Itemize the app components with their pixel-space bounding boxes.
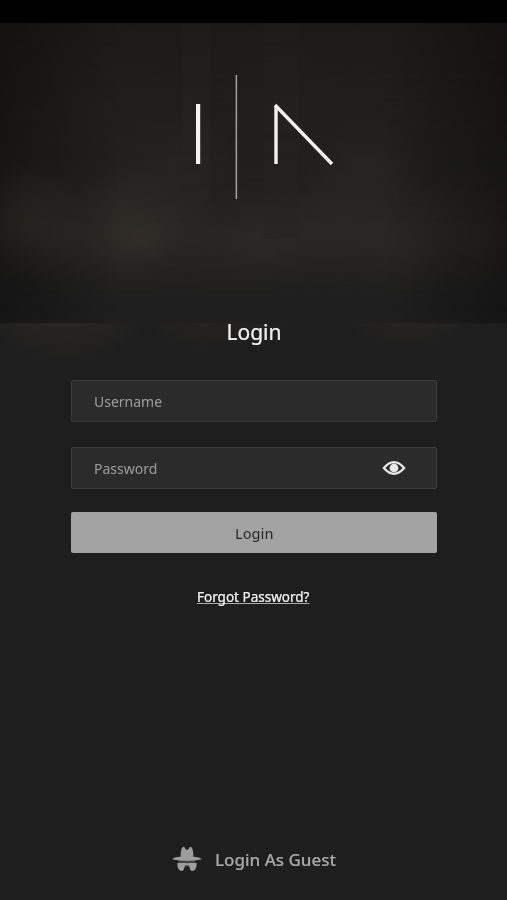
staticText: Login <box>226 318 282 347</box>
button[interactable]: Login <box>71 512 437 553</box>
button[interactable]: Forgot Password? <box>191 586 316 608</box>
staticText: Username <box>94 392 163 411</box>
button[interactable]: Password <box>71 447 437 489</box>
button[interactable]: Username <box>71 380 437 422</box>
staticText: Forgot Password? <box>197 588 310 606</box>
staticText: Password <box>94 459 158 478</box>
staticText: Login <box>235 523 274 543</box>
button[interactable]: Show password <box>381 455 407 481</box>
button[interactable]: Login As Guest <box>161 840 347 878</box>
staticText: Login As Guest <box>215 848 337 871</box>
